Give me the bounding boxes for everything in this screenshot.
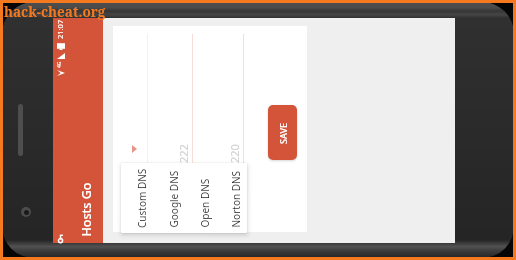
- button[interactable]: Google DNS: [157, 163, 188, 233]
- staticText: SAVE: [277, 122, 289, 144]
- button[interactable]: Custom DNS: [126, 163, 157, 233]
- staticText: Custom DNS: [135, 168, 149, 228]
- staticText: 220: [227, 144, 242, 163]
- staticText: Open DNS: [197, 178, 211, 227]
- button[interactable]: SAVE: [268, 105, 297, 160]
- staticText: 4G: [56, 61, 63, 68]
- staticText: Norton DNS: [228, 170, 242, 227]
- staticText: 222: [176, 144, 191, 163]
- button[interactable]: Select DNS: [132, 145, 137, 153]
- staticText: hack-cheat.org: [4, 3, 106, 21]
- staticText: 21:07: [55, 19, 65, 39]
- button[interactable]: Norton DNS: [219, 163, 247, 233]
- button[interactable]: Open DNS: [188, 163, 219, 233]
- button[interactable]: Options: [58, 234, 64, 243]
- staticText: Hosts Go: [77, 182, 94, 236]
- staticText: Google DNS: [166, 170, 180, 227]
